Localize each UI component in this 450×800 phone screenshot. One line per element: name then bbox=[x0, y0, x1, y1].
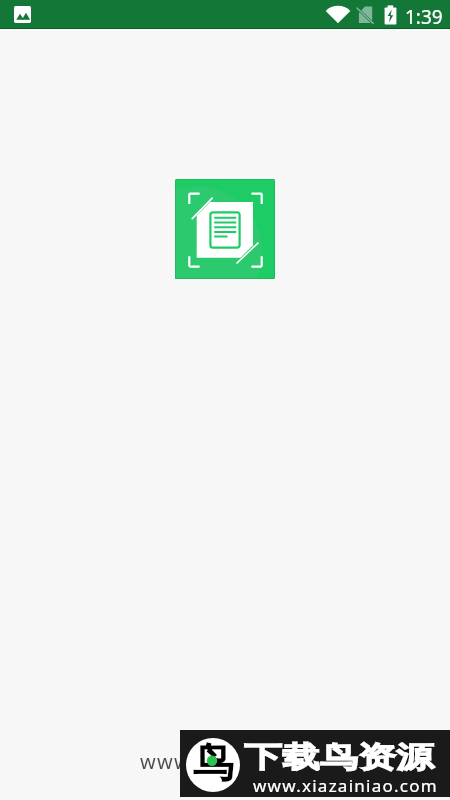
staticText: 下载鸟资源 bbox=[244, 739, 434, 775]
staticText: 鸟 bbox=[193, 738, 234, 790]
button[interactable]: Document scanner app icon bbox=[175, 179, 275, 279]
staticText: www.xiazainiao.com bbox=[140, 748, 355, 775]
staticText: www.xiazainiao.com bbox=[253, 774, 438, 797]
staticText: 1:39 bbox=[405, 4, 443, 30]
